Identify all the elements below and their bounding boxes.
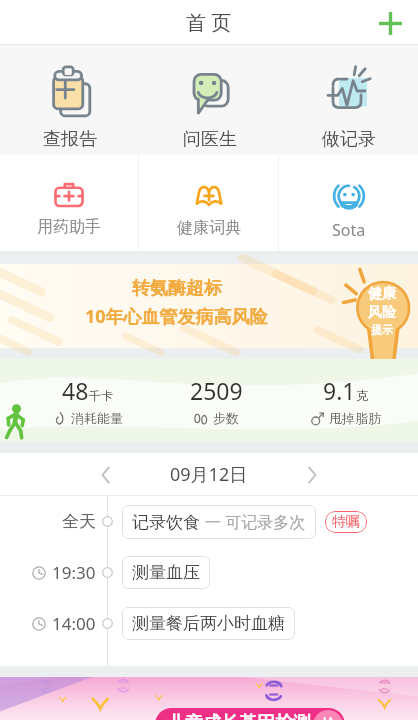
button[interactable]: 19:30	[0, 547, 418, 598]
staticText: 记录饮食	[132, 512, 200, 533]
staticText: 转氨酶超标	[132, 277, 222, 300]
button[interactable]: 9.1	[281, 375, 410, 426]
staticText: 2509	[190, 375, 243, 406]
staticText: 09月12日	[170, 462, 248, 487]
staticText: 做记录	[322, 128, 376, 151]
staticText: 千卡	[89, 388, 113, 403]
staticText: 19:30	[52, 561, 96, 584]
button[interactable]: Add	[370, 3, 410, 43]
staticText: 48	[62, 375, 89, 406]
staticText: 健康	[368, 285, 396, 303]
button[interactable]: Next day	[292, 455, 332, 495]
staticText: 消耗能量	[71, 410, 123, 426]
button[interactable]: 问医生	[140, 45, 279, 155]
button[interactable]: 儿童成长基因检测	[0, 677, 418, 720]
button[interactable]: Previous day	[86, 455, 126, 495]
staticText: 克	[356, 388, 368, 403]
staticText: 10年心血管发病高风险	[85, 304, 268, 329]
button[interactable]: 全天	[0, 496, 418, 547]
staticText: 特嘱	[332, 513, 360, 531]
staticText: Sota	[332, 219, 366, 241]
button[interactable]: 查报告	[0, 45, 140, 155]
button[interactable]: 48	[22, 375, 152, 426]
staticText: 查报告	[43, 128, 97, 151]
staticText: 问医生	[183, 128, 237, 151]
staticText: 用药助手	[37, 217, 101, 237]
staticText: 全天	[62, 511, 96, 532]
staticText: 健康词典	[177, 218, 241, 238]
staticText: 步数	[213, 410, 239, 426]
staticText: 提示	[371, 323, 393, 337]
button[interactable]: Sota	[279, 155, 418, 251]
staticText: 风险	[368, 304, 396, 322]
staticText: 9.1	[323, 375, 356, 406]
staticText: 一 可记录多次	[205, 511, 306, 533]
button[interactable]: 健康词典	[139, 155, 278, 251]
staticText: 首 页	[186, 9, 232, 36]
button[interactable]: 做记录	[279, 45, 418, 155]
staticText: 抢	[321, 716, 336, 720]
staticText: 测量餐后两小时血糖	[132, 613, 285, 634]
staticText: 测量血压	[132, 562, 200, 583]
button[interactable]: 14:00	[0, 598, 418, 649]
staticText: 甩掉脂肪	[329, 410, 381, 426]
button[interactable]: 转氨酶超标	[0, 264, 418, 348]
staticText: 14:00	[52, 612, 96, 635]
button[interactable]: 用药助手	[0, 155, 138, 251]
button[interactable]: 2509	[152, 375, 281, 426]
staticText: 儿童成长基因检测	[167, 712, 311, 720]
